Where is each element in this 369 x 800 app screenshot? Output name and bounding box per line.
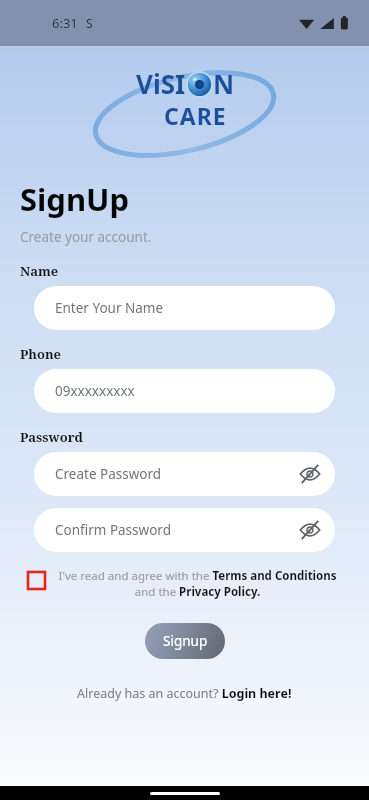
button[interactable]: Signup [145,623,225,659]
button[interactable]: Enter Your Name [34,286,335,330]
staticText: Enter Your Name [55,299,164,317]
staticText: Create Password [55,465,162,483]
staticText: 6:31 [52,14,78,32]
button[interactable]: SignUp [20,178,130,220]
staticText: S [86,15,93,31]
button[interactable]: Agree to terms checkbox [28,568,341,599]
staticText: Password [20,428,83,446]
other: Agree to terms checkbox [28,572,45,589]
button[interactable]: Toggle password visibility [299,463,321,485]
button[interactable]: Create Password [34,452,335,496]
staticText: Confirm Password [55,521,171,539]
staticText: Signup [163,632,208,650]
staticText: CARE [164,100,227,131]
button[interactable]: Confirm Password [34,508,335,552]
staticText: ViSI [136,66,186,101]
button[interactable]: Toggle password visibility [299,519,321,541]
staticText: Phone [20,345,62,363]
button[interactable]: Already has an account? Login here! [77,685,292,702]
staticText: 09xxxxxxxxx [55,382,135,400]
staticText: N [213,66,235,101]
staticText: Create your account. [20,228,152,246]
staticText: I've read and agree with the Terms and C… [54,568,341,599]
staticText: Name [20,262,59,280]
button[interactable]: 09xxxxxxxxx [34,369,335,413]
